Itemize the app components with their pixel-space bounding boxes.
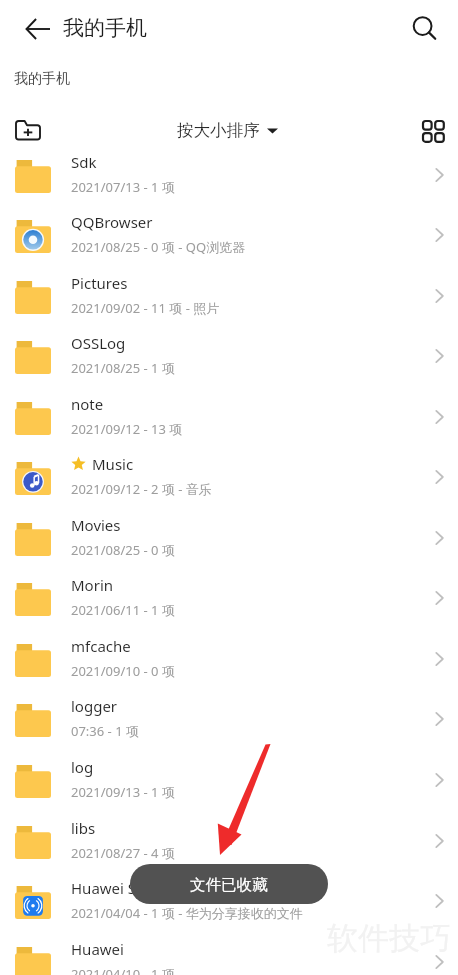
staticText: logger [71,696,118,716]
staticText: 2021/09/02 - 11 项 - 照片 [71,299,220,317]
staticText: Huawei Share [71,878,169,898]
button[interactable]: Movies [0,509,458,570]
staticText: 2021/08/25 - 1 项 [71,359,175,377]
staticText: Movies [71,515,121,535]
button[interactable]: Sdk [0,158,458,207]
button[interactable]: Music [0,448,458,509]
staticText: 2021/07/13 - 1 项 [71,178,175,196]
button[interactable]: New folder [8,110,48,150]
button[interactable]: Back [16,7,60,51]
button[interactable]: QQBrowser [0,206,458,267]
staticText: 软件技巧 [327,919,451,958]
staticText: 2021/09/13 - 1 项 [71,783,175,801]
staticText: libs [71,818,96,838]
staticText: note [71,394,104,414]
button[interactable]: OSSLog [0,327,458,388]
staticText: 2021/08/27 - 4 项 [71,844,175,862]
staticText: log [71,757,94,777]
button[interactable]: log [0,751,458,812]
staticText: 我的手机 [14,70,70,88]
button[interactable]: mfcache [0,630,458,691]
staticText: 我的手机 [63,15,147,41]
button[interactable]: Morin [0,569,458,630]
staticText: Morin [71,575,114,595]
button[interactable]: libs [0,812,458,873]
button[interactable]: logger [0,690,458,751]
button[interactable]: note [0,388,458,449]
button[interactable]: Search [403,7,447,51]
button[interactable]: Grid view [412,110,452,150]
staticText: 07:36 - 1 项 [71,722,139,740]
staticText: 文件已收藏 [190,875,268,895]
staticText: Huawei [71,939,124,959]
button[interactable]: Huawei [0,933,458,975]
staticText: 2021/09/10 - 0 项 [71,662,175,680]
staticText: 2021/04/10 - 1 项 [71,965,175,975]
staticText: 2021/09/12 - 2 项 - 音乐 [71,480,212,498]
staticText: 2021/08/25 - 0 项 - QQ浏览器 [71,238,246,256]
staticText: 2021/04/04 - 1 项 - 华为分享接收的文件 [71,904,303,922]
button[interactable]: Pictures [0,267,458,328]
button[interactable]: Huawei Share [0,872,458,933]
staticText: 2021/06/11 - 1 项 [71,601,175,619]
staticText: Sdk [71,158,97,172]
staticText: Music [92,454,134,474]
staticText: 按大小排序 [177,120,260,141]
staticText: Pictures [71,273,128,293]
staticText: 2021/09/12 - 13 项 [71,420,183,438]
staticText: mfcache [71,636,131,656]
staticText: 2021/08/25 - 0 项 [71,541,175,559]
staticText: OSSLog [71,333,126,353]
button[interactable]: 按大小排序 [177,120,278,141]
staticText: QQBrowser [71,212,153,232]
